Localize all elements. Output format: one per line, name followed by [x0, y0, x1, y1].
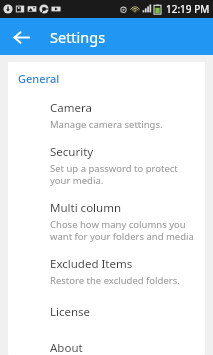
staticText: Security	[50, 144, 94, 160]
staticText: Excluded Items	[50, 256, 133, 272]
button[interactable]: Back	[6, 22, 36, 52]
staticText: Multi column	[50, 200, 122, 216]
button[interactable]: Security	[8, 144, 205, 187]
staticText: Restore the excluded folders.	[50, 274, 180, 287]
button[interactable]: Excluded Items	[8, 256, 205, 287]
staticText: Chose how many columns you want for your…	[50, 218, 197, 243]
button[interactable]: About	[8, 340, 205, 355]
staticText: Set up a password to protect your media.	[50, 162, 197, 187]
button[interactable]: Multi column	[8, 200, 205, 243]
staticText: About	[50, 340, 83, 355]
staticText: License	[50, 304, 91, 320]
button[interactable]: Camera	[8, 100, 205, 131]
staticText: Manage camera settings.	[50, 118, 163, 131]
staticText: 12:19 PM	[166, 2, 210, 16]
staticText: Camera	[50, 100, 92, 116]
staticText: General	[18, 71, 60, 86]
button[interactable]: License	[8, 304, 205, 320]
staticText: Settings	[50, 27, 106, 47]
